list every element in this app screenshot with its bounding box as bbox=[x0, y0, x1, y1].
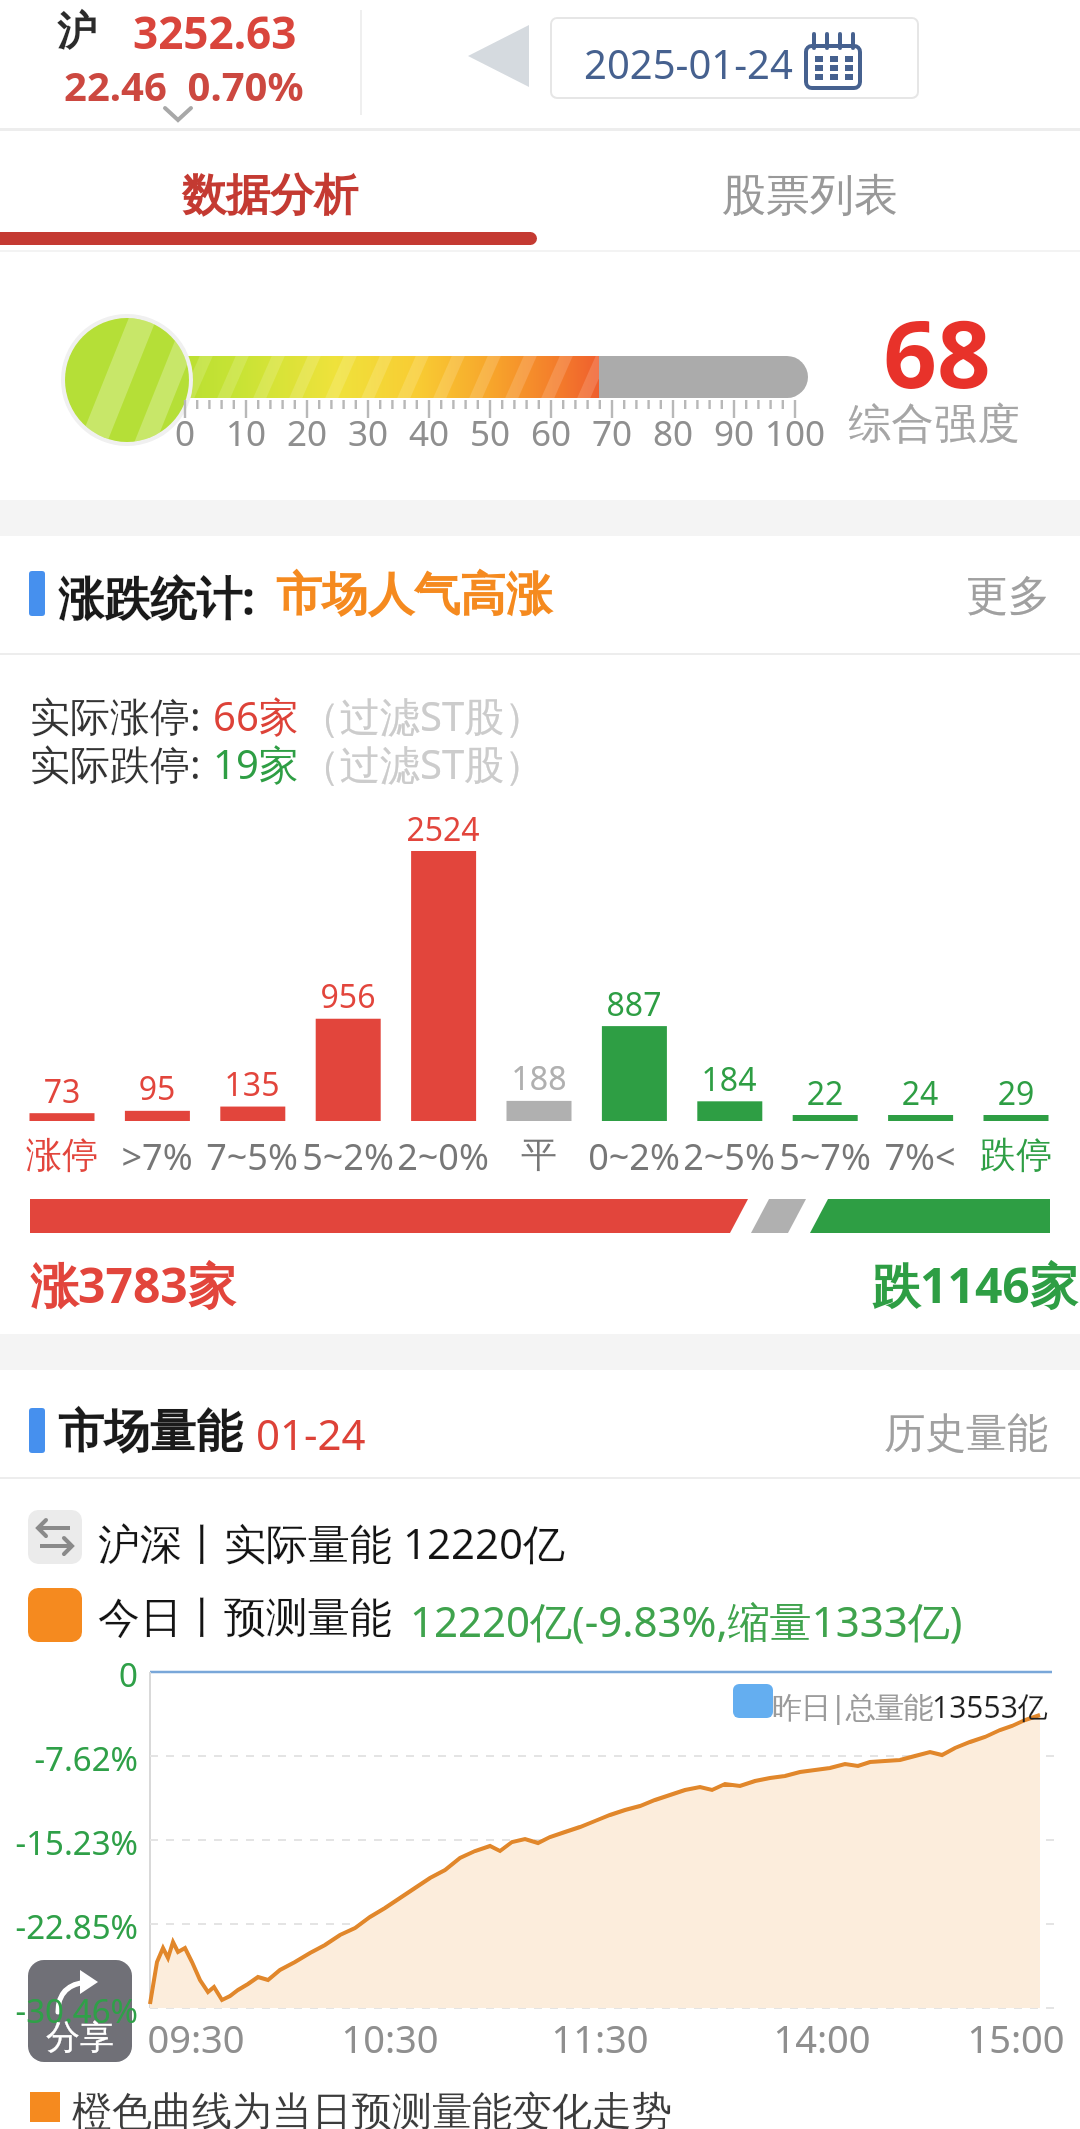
staticText: 70 bbox=[562, 409, 662, 457]
staticText: 跌停 bbox=[956, 1132, 1076, 1177]
staticText: 7%< bbox=[860, 1132, 980, 1181]
staticText: >7% bbox=[97, 1132, 217, 1181]
staticText: 综合强度 bbox=[848, 398, 1020, 451]
staticText: 橙色曲线为当日预测量能变化走势 bbox=[72, 2086, 672, 2129]
staticText: 涨停 bbox=[2, 1132, 122, 1177]
staticText: 昨日|总量能 bbox=[772, 1686, 933, 1727]
staticText: 14:00 bbox=[762, 2012, 882, 2064]
staticText: 涨3783家 bbox=[30, 1252, 236, 1318]
staticText: 7~5% bbox=[192, 1132, 312, 1181]
staticText: 956 bbox=[288, 974, 408, 1018]
staticText: 73 bbox=[2, 1069, 122, 1113]
staticText: 24 bbox=[860, 1071, 980, 1115]
staticText: 市场人气高涨 bbox=[276, 566, 552, 624]
staticText: 股票列表 bbox=[600, 168, 1020, 223]
staticText: 10:30 bbox=[330, 2012, 450, 2064]
staticText: 0 bbox=[135, 409, 235, 457]
staticText: 22 bbox=[765, 1071, 885, 1115]
staticText: 2~5% bbox=[669, 1132, 789, 1181]
staticText: 40 bbox=[379, 409, 479, 457]
staticText: 30 bbox=[318, 409, 418, 457]
staticText: 60 bbox=[501, 409, 601, 457]
staticText: 15:00 bbox=[956, 2012, 1076, 2064]
staticText: 实际涨停: bbox=[30, 688, 201, 743]
staticText: 135 bbox=[192, 1062, 312, 1106]
staticText: 2~0% bbox=[383, 1132, 503, 1181]
staticText: 5~7% bbox=[765, 1132, 885, 1181]
button[interactable] bbox=[420, 10, 540, 120]
staticText: 3252.63 bbox=[133, 2, 297, 62]
staticText: -22.85% bbox=[0, 1904, 138, 1949]
staticText: 50 bbox=[440, 409, 540, 457]
staticText: 实际跌停: bbox=[30, 736, 201, 791]
staticText: 12220亿(-9.83%,缩量1333亿) bbox=[410, 1592, 963, 1649]
staticText: -7.62% bbox=[0, 1736, 138, 1781]
staticText: 0 bbox=[0, 1652, 138, 1697]
staticText: 01-24 bbox=[256, 1405, 366, 1462]
staticText: 数据分析 bbox=[60, 168, 480, 223]
staticText: 平 bbox=[479, 1132, 599, 1177]
button[interactable] bbox=[60, 142, 480, 246]
staticText: 沪 bbox=[57, 6, 97, 56]
staticText: 市场量能 bbox=[58, 1403, 242, 1461]
staticText: 887 bbox=[574, 982, 694, 1026]
staticText: （过滤ST股） bbox=[300, 736, 545, 791]
staticText: -15.23% bbox=[0, 1820, 138, 1865]
staticText: 68 bbox=[847, 288, 1027, 416]
staticText: 29 bbox=[956, 1071, 1076, 1115]
staticText: 沪深丨实际量能 12220亿 bbox=[98, 1514, 566, 1571]
button[interactable] bbox=[950, 560, 1060, 630]
button[interactable] bbox=[870, 1395, 1060, 1465]
button[interactable] bbox=[28, 1960, 132, 2062]
staticText: 11:30 bbox=[540, 2012, 660, 2064]
staticText: 分享 bbox=[28, 2016, 132, 2059]
staticText: 66家 bbox=[213, 688, 299, 743]
staticText: 95 bbox=[97, 1066, 217, 1110]
staticText: 涨跌统计: bbox=[58, 566, 255, 629]
staticText: 90 bbox=[684, 409, 784, 457]
staticText: 22.46 0.70% bbox=[64, 58, 304, 112]
staticText: 188 bbox=[479, 1056, 599, 1100]
staticText: 今日丨预测量能 bbox=[98, 1592, 392, 1645]
staticText: 13553亿 bbox=[932, 1686, 1048, 1727]
staticText: 184 bbox=[669, 1057, 789, 1101]
staticText: 80 bbox=[623, 409, 723, 457]
button[interactable] bbox=[600, 142, 1020, 246]
staticText: （过滤ST股） bbox=[300, 688, 545, 743]
staticText: 10 bbox=[196, 409, 296, 457]
staticText: 19家 bbox=[213, 736, 299, 791]
staticText: 历史量能 bbox=[884, 1408, 1048, 1460]
staticText: 5~2% bbox=[288, 1132, 408, 1181]
staticText: 更多 bbox=[966, 570, 1050, 623]
staticText: 跌1146家 bbox=[872, 1252, 1078, 1318]
staticText: -30.46% bbox=[0, 1988, 138, 2033]
staticText: 09:30 bbox=[136, 2012, 256, 2064]
staticText: 20 bbox=[257, 409, 357, 457]
staticText: 0~2% bbox=[574, 1132, 694, 1181]
button[interactable] bbox=[551, 18, 918, 98]
staticText: 2025-01-24 bbox=[584, 36, 793, 90]
staticText: 2524 bbox=[383, 807, 503, 851]
staticText: 100 bbox=[745, 409, 845, 457]
